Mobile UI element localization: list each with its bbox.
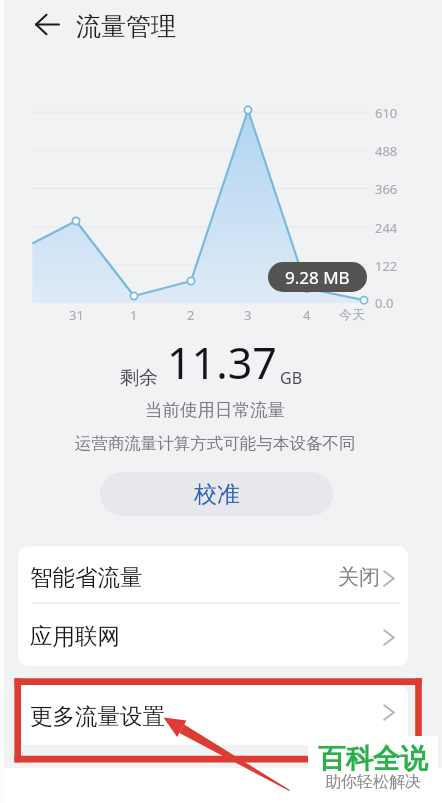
button[interactable]: 应用联网 xyxy=(18,604,408,666)
staticText: 4 xyxy=(303,306,311,324)
staticText: 11.37 xyxy=(167,333,277,392)
staticText: 助你轻松解决 xyxy=(325,772,421,792)
staticText: 122 xyxy=(375,257,398,275)
staticText: 366 xyxy=(375,180,398,198)
staticText: 610 xyxy=(375,104,398,122)
staticText: 校准 xyxy=(194,480,240,509)
staticText: 更多流量设置 xyxy=(30,702,165,730)
staticText: 9.28 MB xyxy=(285,266,350,289)
staticText: GB xyxy=(280,367,303,389)
staticText: 244 xyxy=(375,219,398,237)
staticText: 31 xyxy=(69,306,84,324)
staticText: 2 xyxy=(187,306,195,324)
button[interactable]: 更多流量设置 xyxy=(18,684,408,745)
staticText: 智能省流量 xyxy=(30,563,143,591)
staticText: 488 xyxy=(375,142,398,160)
button[interactable]: 校准 xyxy=(100,472,333,516)
staticText: 应用联网 xyxy=(30,622,120,650)
staticText: 剩余 xyxy=(120,366,158,390)
staticText: 0.0 xyxy=(375,294,394,312)
button[interactable]: 智能省流量 xyxy=(18,546,408,602)
staticText: 流量管理 xyxy=(76,11,176,42)
staticText: 运营商流量计算方式可能与本设备不同 xyxy=(0,433,436,454)
staticText: 3 xyxy=(244,306,252,324)
button[interactable]: Back xyxy=(0,0,80,52)
staticText: 关闭 xyxy=(338,564,380,590)
staticText: 当前使用日常流量 xyxy=(0,399,436,421)
staticText: 百科全说 xyxy=(318,742,428,777)
staticText: 今天 xyxy=(339,306,365,322)
staticText: 1 xyxy=(130,306,138,324)
